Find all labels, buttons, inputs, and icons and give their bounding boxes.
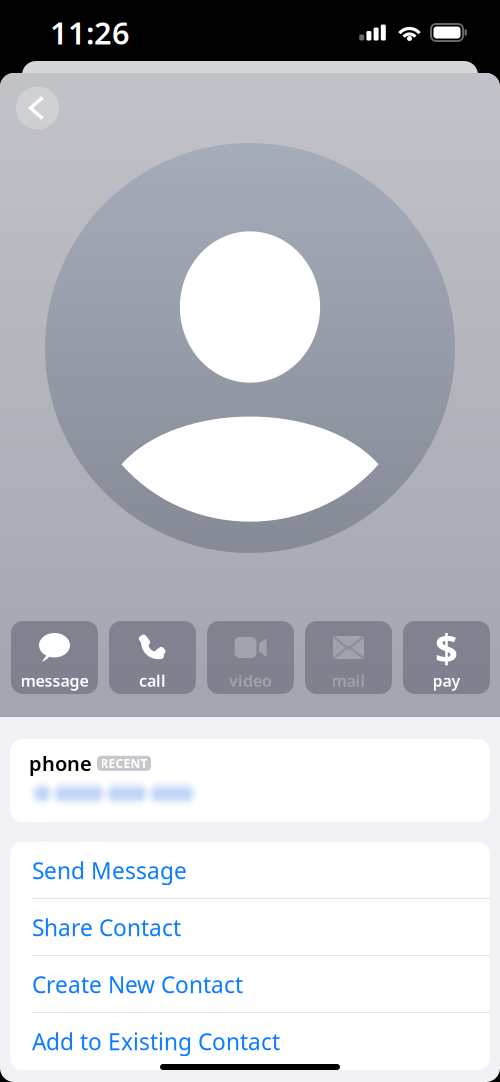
staticText: $ xyxy=(435,621,458,674)
button[interactable]: $ xyxy=(403,621,490,694)
staticText: call xyxy=(139,670,166,691)
staticText: mail xyxy=(331,670,365,691)
staticText: phone xyxy=(29,750,92,777)
button[interactable]: Back xyxy=(16,86,59,129)
staticText: Add to Existing Contact xyxy=(32,1026,280,1056)
button[interactable]: mail xyxy=(305,621,392,694)
staticText: 11:26 xyxy=(50,12,130,53)
button[interactable]: Send Message xyxy=(10,842,490,899)
staticText: message xyxy=(20,670,88,691)
button[interactable]: Add to Existing Contact xyxy=(10,1013,490,1070)
button[interactable]: video xyxy=(207,621,294,694)
staticText: video xyxy=(229,670,272,691)
staticText: Create New Contact xyxy=(32,969,243,999)
staticText: RECENT xyxy=(100,755,147,771)
button[interactable]: call xyxy=(109,621,196,694)
button[interactable]: message xyxy=(11,621,98,694)
staticText: pay xyxy=(432,670,460,691)
button[interactable]: Create New Contact xyxy=(10,956,490,1013)
button[interactable]: Share Contact xyxy=(10,899,490,956)
staticText: Share Contact xyxy=(32,912,181,942)
staticText: Send Message xyxy=(32,855,187,885)
